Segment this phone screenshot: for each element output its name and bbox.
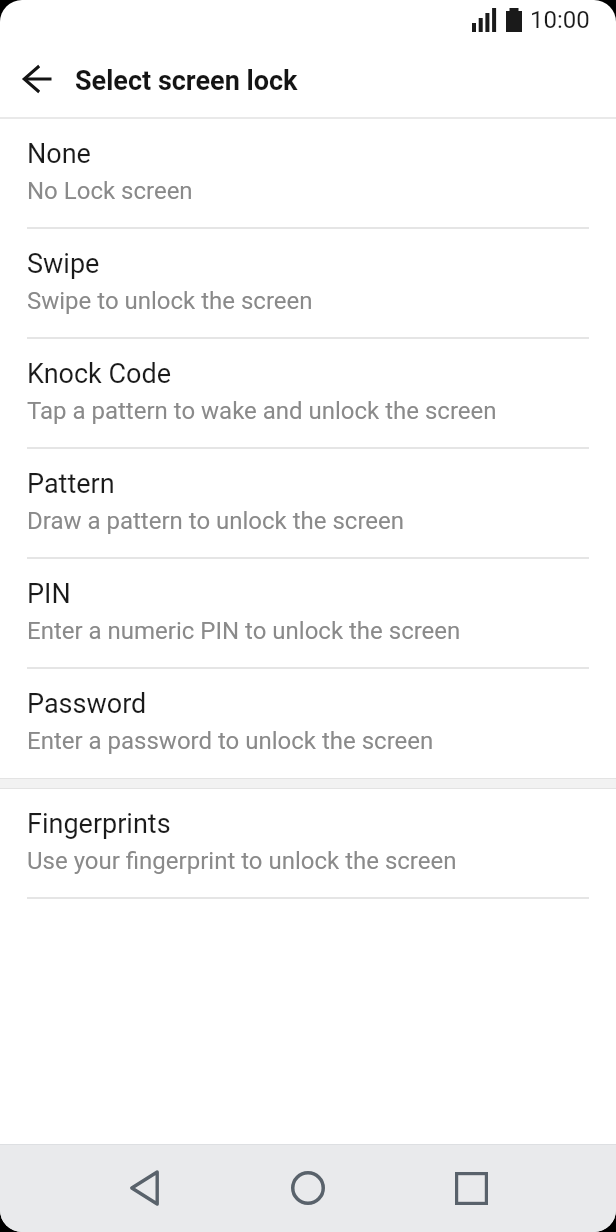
button[interactable] xyxy=(89,1144,199,1232)
button[interactable]: None xyxy=(0,119,616,229)
staticText: Password xyxy=(27,688,147,720)
staticText: Select screen lock xyxy=(75,65,298,97)
staticText: Use your fingerprint to unlock the scree… xyxy=(27,847,457,875)
button[interactable]: Fingerprints xyxy=(0,789,616,899)
staticText: Enter a numeric PIN to unlock the screen xyxy=(27,617,461,645)
staticText: 10:00 xyxy=(530,6,590,34)
staticText: Draw a pattern to unlock the screen xyxy=(27,507,405,535)
button[interactable] xyxy=(253,1144,363,1232)
button[interactable] xyxy=(416,1144,526,1232)
button[interactable]: Pattern xyxy=(0,449,616,559)
staticText: Swipe xyxy=(27,248,100,280)
staticText: PIN xyxy=(27,578,71,610)
button[interactable]: PIN xyxy=(0,559,616,669)
staticText: Swipe to unlock the screen xyxy=(27,287,313,315)
button[interactable]: Password xyxy=(0,669,616,778)
button[interactable]: Swipe xyxy=(0,229,616,339)
button[interactable]: Knock Code xyxy=(0,339,616,449)
staticText: Pattern xyxy=(27,468,115,500)
staticText: Fingerprints xyxy=(27,808,171,840)
staticText: No Lock screen xyxy=(27,177,193,205)
staticText: None xyxy=(27,138,91,170)
button[interactable] xyxy=(0,44,73,117)
staticText: Enter a password to unlock the screen xyxy=(27,727,434,755)
staticText: Tap a pattern to wake and unlock the scr… xyxy=(27,397,497,425)
staticText: Knock Code xyxy=(27,358,171,390)
